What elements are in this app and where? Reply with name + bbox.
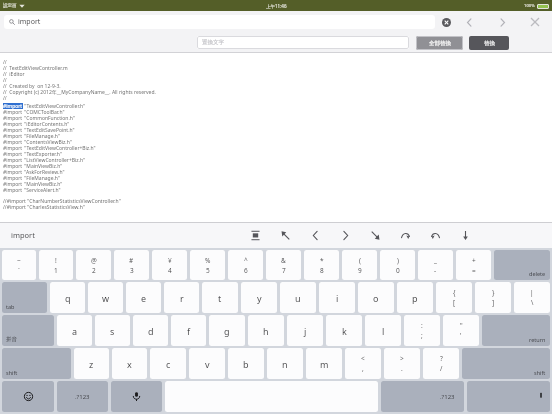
button[interactable]: n [267,348,303,379]
button[interactable]: # [114,250,149,280]
button[interactable]: 全部替換 [416,36,463,50]
button[interactable]: ¥ [152,250,187,280]
button[interactable]: Emoji [2,381,54,412]
button[interactable]: q [50,282,85,313]
staticText: "FileManage.h" [23,175,60,181]
staticText: g [224,325,230,337]
button[interactable]: + [456,250,491,280]
button[interactable]: Move up [277,227,293,243]
button[interactable]: Go down [457,227,473,243]
button[interactable]: delete [494,250,550,280]
button[interactable]: p [397,282,433,313]
staticText: //#import "CharlesStatisticsView.h" [3,204,85,210]
button[interactable]: Close search [528,15,542,29]
button[interactable]: ? [423,348,459,379]
button[interactable]: Next match [495,15,509,29]
button[interactable]: l [365,315,401,346]
staticText: #import [3,139,23,145]
button[interactable]: Redo [397,227,413,243]
button[interactable]: t [202,282,238,313]
staticText: + [472,256,476,265]
button[interactable]: " [443,315,479,346]
button[interactable]: v [189,348,225,379]
staticText: e [141,292,147,304]
button[interactable]: j [287,315,323,346]
button[interactable]: Next [337,227,353,243]
staticText: #import [3,151,23,157]
button[interactable]: @ [76,250,111,280]
button[interactable]: f [171,315,206,346]
button[interactable]: ~ [2,250,36,280]
button[interactable]: 替換 [469,36,509,50]
button[interactable]: Previous [307,227,323,243]
button[interactable]: ( [342,250,377,280]
button[interactable]: Undo [427,227,443,243]
button[interactable]: c [150,348,186,379]
button[interactable]: 置換文字 [197,36,409,49]
button[interactable]: > [384,348,420,379]
button[interactable]: 拼音 [2,315,54,346]
button[interactable]: i [319,282,355,313]
button[interactable]: : [404,315,440,346]
button[interactable]: x [112,348,147,379]
button[interactable]: Move down [367,227,383,243]
button[interactable]: e [126,282,161,313]
button[interactable]: o [358,282,394,313]
button[interactable]: < [345,348,381,379]
staticText: @ [91,256,97,265]
staticText: // Copyright (c) 2012年__MyCompanyName__.… [3,89,156,95]
button[interactable]: import [6,227,40,243]
button[interactable]: r [164,282,199,313]
button[interactable]: } [475,282,511,313]
button[interactable]: g [209,315,245,346]
button[interactable]: h [248,315,284,346]
button[interactable]: y [241,282,277,313]
staticText: ( [359,256,361,265]
button[interactable]: _ [418,250,453,280]
button[interactable]: ! [39,250,73,280]
staticText: 7 [282,266,286,275]
button[interactable]: s [95,315,130,346]
staticText: "FileManage.h" [23,133,60,139]
staticText: #import [3,109,23,115]
button[interactable]: ) [380,250,415,280]
staticText: f [187,325,191,337]
button[interactable]: k [326,315,362,346]
button[interactable]: return [482,315,550,346]
button[interactable]: b [228,348,264,379]
button[interactable]: { [436,282,472,313]
button[interactable]: Previous match [462,15,476,29]
button[interactable]: u [280,282,316,313]
staticText: u [295,292,301,304]
staticText: w [102,292,110,304]
button[interactable]: import [4,15,435,29]
button[interactable]: Clear search [440,16,452,28]
staticText: //#import "CharNumberStatisticsViewContr… [3,198,121,204]
button[interactable]: z [74,348,109,379]
button[interactable]: shift [2,348,71,379]
staticText: #import [3,157,23,163]
button[interactable]: a [57,315,92,346]
staticText: import [11,230,35,240]
button[interactable]: shift [462,348,550,379]
staticText: 拼音 [6,336,17,343]
button[interactable]: % [190,250,225,280]
button[interactable]: Hide keyboard [467,381,550,412]
button[interactable]: w [88,282,123,313]
staticText: t [218,292,222,304]
button[interactable]: | [514,282,550,313]
button[interactable]: Indent [247,227,263,243]
button[interactable]: & [266,250,301,280]
staticText: a [72,325,78,337]
staticText: * [320,256,324,265]
button[interactable]: d [133,315,168,346]
button[interactable]: .?123 [57,381,108,412]
button[interactable]: * [304,250,339,280]
button[interactable]: ^ [228,250,263,280]
button[interactable]: tab [2,282,47,313]
button[interactable]: .?123 [381,381,464,412]
staticText: % [205,256,211,265]
button[interactable]: m [306,348,342,379]
button[interactable]: Dictate [111,381,162,412]
